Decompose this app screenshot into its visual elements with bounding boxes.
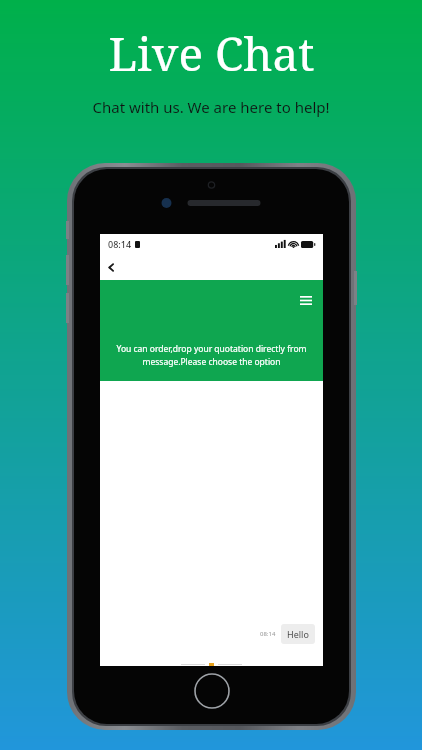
button[interactable]: Hello [281, 624, 315, 644]
staticText: You can order,drop your quotation direct… [106, 343, 317, 368]
staticText: 08:14 [260, 630, 276, 638]
staticText: Chat with us. We are here to help! [92, 97, 330, 117]
button[interactable]: Back [100, 256, 122, 278]
staticText: Hello [287, 628, 309, 640]
staticText: 08:14 [108, 238, 132, 250]
staticText: Live Chat [108, 22, 315, 85]
button[interactable]: Menu [296, 290, 316, 310]
